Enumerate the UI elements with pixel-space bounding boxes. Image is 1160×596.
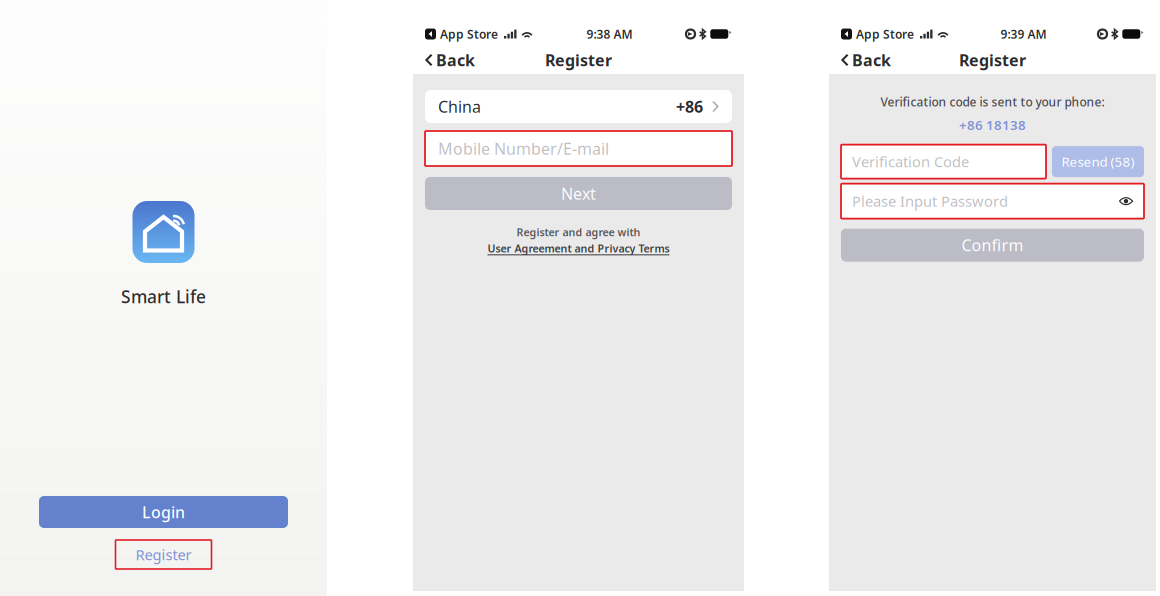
staticText: +86 18138 — [959, 116, 1026, 134]
staticText: 9:38 AM — [586, 26, 632, 42]
button[interactable]: Confirm — [841, 229, 1144, 262]
staticText: Smart Life — [121, 285, 206, 308]
button[interactable]: Login — [39, 496, 288, 528]
button[interactable]: Resend (58) — [1052, 146, 1144, 177]
button[interactable]: Mobile Number/E-mail — [425, 131, 732, 166]
staticText: Resend (58) — [1061, 153, 1134, 170]
button[interactable]: User Agreement and Privacy Terms — [487, 241, 669, 255]
button[interactable]: Next — [425, 177, 732, 210]
staticText: Confirm — [961, 234, 1023, 256]
staticText: Register and agree with — [516, 225, 640, 239]
button[interactable]: Back — [413, 45, 487, 75]
staticText: China — [438, 96, 481, 117]
button[interactable]: Show password — [1119, 196, 1133, 206]
staticText: Verification code is sent to your phone: — [880, 94, 1104, 110]
staticText: Back — [852, 49, 891, 71]
button[interactable]: China — [425, 90, 732, 123]
button[interactable]: Register — [115, 540, 211, 569]
staticText: User Agreement and Privacy Terms — [487, 241, 669, 255]
staticText: Register — [545, 49, 612, 71]
staticText: Next — [561, 183, 596, 204]
staticText: Please Input Password — [852, 191, 1008, 211]
button[interactable]: Back — [829, 45, 903, 75]
staticText: Register — [135, 545, 191, 564]
staticText: Back — [436, 49, 475, 71]
staticText: Login — [142, 501, 185, 523]
staticText: Register — [959, 49, 1026, 71]
staticText: Mobile Number/E-mail — [438, 138, 609, 159]
button[interactable]: Please Input Password — [841, 184, 1144, 219]
button[interactable]: Verification Code — [841, 145, 1046, 179]
staticText: App Store — [440, 26, 498, 42]
staticText: +86 — [676, 96, 703, 117]
staticText: App Store — [856, 26, 914, 42]
staticText: Verification Code — [852, 152, 969, 171]
staticText: 9:39 AM — [1000, 26, 1046, 42]
